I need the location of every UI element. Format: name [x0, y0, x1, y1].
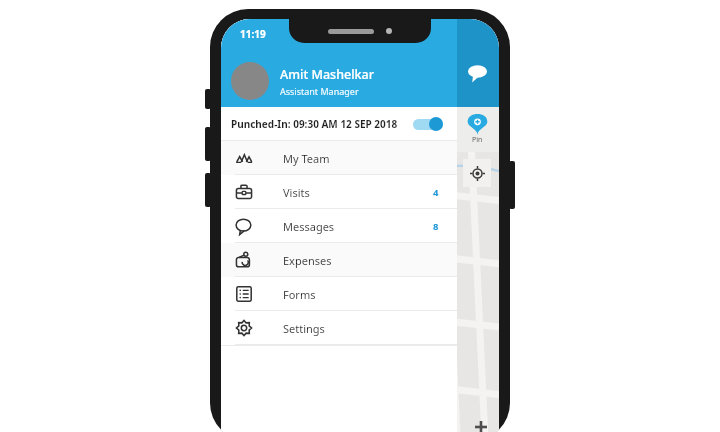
staticText: Messages: [283, 219, 335, 234]
button[interactable]: Visits: [221, 175, 457, 209]
button[interactable]: Forms: [221, 277, 457, 311]
staticText: Settings: [283, 321, 325, 336]
button[interactable]: Messages: [221, 209, 457, 243]
staticText: Pin: [472, 135, 483, 145]
button[interactable]: Pin: [456, 107, 499, 152]
button[interactable]: Chat: [456, 19, 499, 107]
staticText: Punched-In: 09:30 AM 12 SEP 2018: [231, 117, 398, 131]
staticText: Assistant Manager: [280, 85, 359, 97]
button[interactable]: Zoom in: [470, 416, 492, 432]
staticText: 8: [433, 220, 439, 233]
staticText: Expenses: [283, 253, 332, 268]
staticText: My Team: [283, 151, 330, 166]
staticText: 11:19: [240, 27, 266, 41]
button[interactable]: Settings: [221, 311, 457, 345]
staticText: 4: [433, 186, 439, 199]
button[interactable]: Punched-In: 09:30 AM 12 SEP 2018: [221, 107, 457, 140]
button[interactable]: Expenses: [221, 243, 457, 277]
staticText: Visits: [283, 185, 310, 200]
staticText: Amit Mashelkar: [280, 66, 374, 83]
button[interactable]: My location: [463, 159, 491, 187]
staticText: Forms: [283, 287, 316, 302]
button[interactable]: My Team: [221, 141, 457, 175]
